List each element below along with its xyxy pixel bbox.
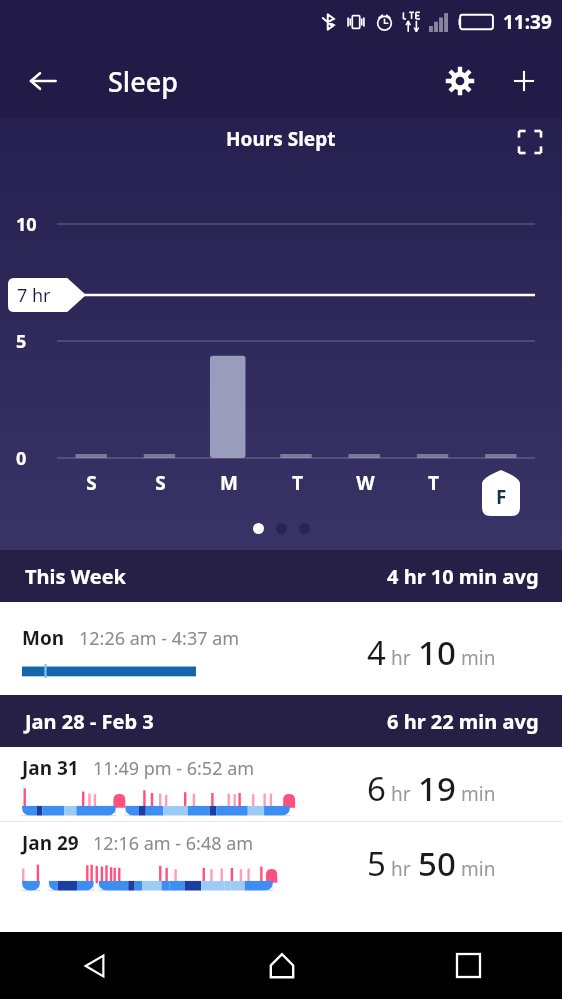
staticText: T xyxy=(428,470,439,496)
button[interactable]: Back xyxy=(0,932,188,999)
staticText: 11:39 xyxy=(503,9,552,35)
staticText: S xyxy=(155,470,166,496)
staticText: hr xyxy=(391,781,411,807)
staticText: Jan 28 - Feb 3 xyxy=(25,708,154,735)
staticText: 6 hr 22 min avg xyxy=(387,708,539,735)
button[interactable]: Jan 29 xyxy=(0,822,562,897)
staticText: min xyxy=(461,781,496,807)
button[interactable]: Back xyxy=(18,56,68,106)
staticText: M xyxy=(220,470,238,496)
staticText: T xyxy=(292,470,303,496)
staticText: F xyxy=(496,484,507,510)
staticText: 10 xyxy=(418,630,456,675)
button[interactable]: Jan 28 - Feb 3 xyxy=(0,695,562,747)
staticText: 6 xyxy=(367,766,386,811)
staticText: min xyxy=(461,856,496,882)
staticText: 12:26 am - 4:37 am xyxy=(79,626,240,651)
staticText: Hours Slept xyxy=(226,126,336,152)
button[interactable]: Settings xyxy=(434,55,486,107)
staticText: 19 xyxy=(418,766,456,811)
staticText: Mon xyxy=(22,625,65,651)
staticText: 5 xyxy=(367,841,386,886)
staticText: 7 hr xyxy=(17,283,51,308)
staticText: hr xyxy=(391,645,411,671)
staticText: W xyxy=(356,470,375,496)
button[interactable]: Expand chart xyxy=(508,120,552,164)
button[interactable]: Mon xyxy=(0,602,562,695)
button[interactable]: Jan 31 xyxy=(0,747,562,822)
staticText: Jan 31 xyxy=(22,755,79,781)
staticText: min xyxy=(461,645,496,671)
button[interactable]: F xyxy=(482,470,520,516)
staticText: 12:16 am - 6:48 am xyxy=(93,831,254,856)
staticText: Sleep xyxy=(108,63,178,100)
staticText: S xyxy=(86,470,97,496)
staticText: 4 hr 10 min avg xyxy=(387,563,539,590)
staticText: This Week xyxy=(25,563,126,590)
staticText: 5 xyxy=(16,329,27,354)
staticText: 11:49 pm - 6:52 am xyxy=(93,756,255,781)
button[interactable]: Home xyxy=(188,932,375,999)
button[interactable]: Recent apps xyxy=(375,932,562,999)
staticText: hr xyxy=(391,856,411,882)
staticText: 50 xyxy=(418,841,456,886)
staticText: 4 xyxy=(367,630,386,675)
staticText: 10 xyxy=(16,212,37,237)
button[interactable]: This Week xyxy=(0,550,562,602)
button[interactable]: Add xyxy=(500,57,548,105)
staticText: 0 xyxy=(16,446,27,471)
staticText: Jan 29 xyxy=(22,830,79,856)
